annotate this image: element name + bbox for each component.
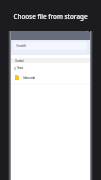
staticText: Choose the file: [16, 44, 26, 48]
staticText: Test document.txt: [23, 76, 35, 80]
staticText: Previous: [17, 66, 23, 70]
button[interactable]: Previous: [10, 62, 90, 72]
button[interactable]: Test document.txt: [10, 72, 90, 82]
button[interactable]: Choose the file: [13, 42, 87, 50]
staticText: Choose file from storage: [13, 12, 88, 21]
staticText: Download: [15, 59, 23, 63]
